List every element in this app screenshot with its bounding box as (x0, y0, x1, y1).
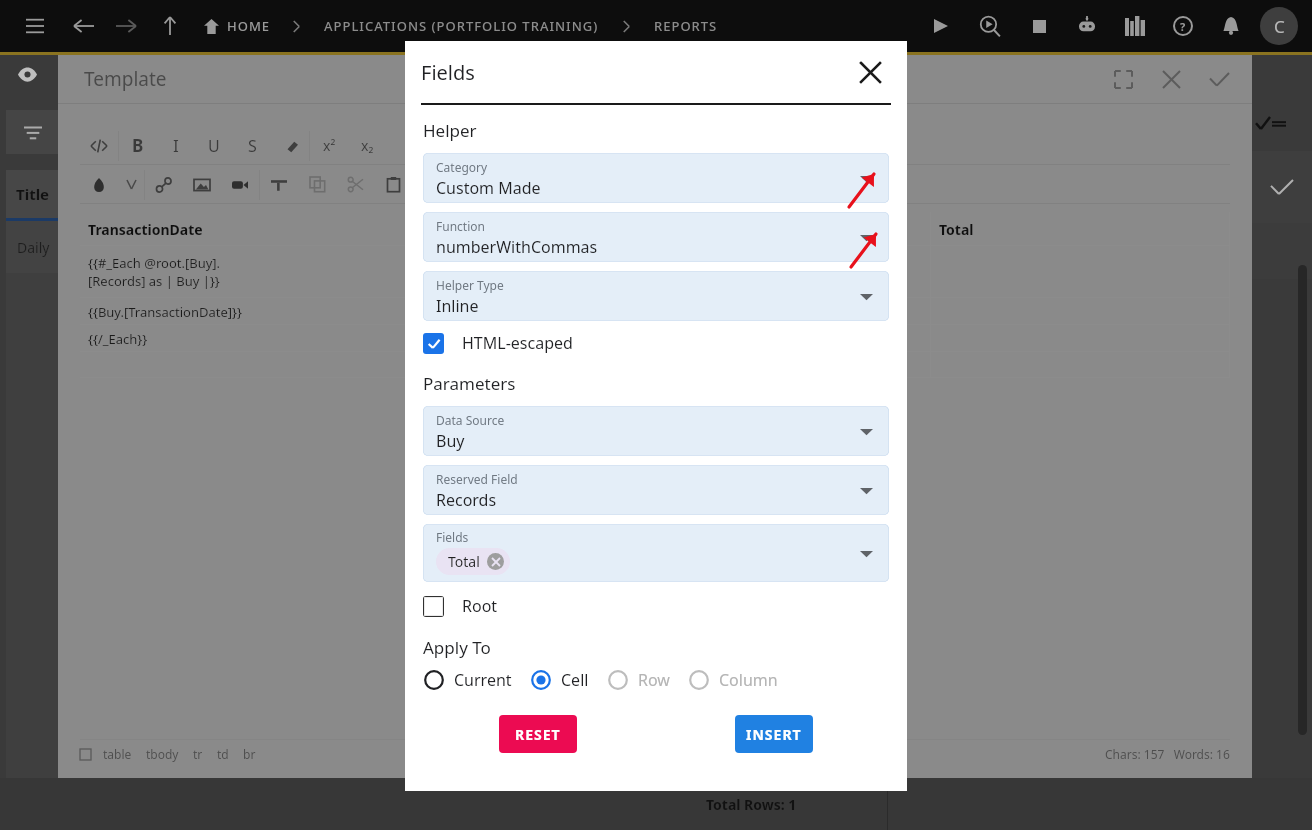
button[interactable]: Title (6, 170, 60, 218)
staticText: Helper Type (436, 277, 504, 293)
button[interactable]: Stop (1026, 13, 1052, 39)
button[interactable] (298, 165, 336, 204)
button[interactable]: Save template (1202, 62, 1236, 96)
staticText: [Records] as | Buy |}} (88, 272, 220, 290)
staticText: RESET (515, 725, 561, 744)
button[interactable]: B (119, 126, 157, 165)
button[interactable]: Assistant (1074, 13, 1100, 39)
staticText: Chars: 157 Words: 16 (1105, 746, 1230, 762)
button[interactable]: x² (310, 126, 348, 165)
button[interactable]: Row (607, 669, 670, 691)
button[interactable]: Close template (1154, 62, 1188, 96)
staticText: Fields (436, 529, 469, 545)
staticText: Custom Made (436, 177, 541, 199)
staticText: numberWithCommas (436, 236, 598, 258)
staticText: Total (939, 220, 974, 239)
staticText: Total Rows: 1 (706, 795, 797, 814)
button[interactable]: S (233, 126, 271, 165)
button[interactable]: Helper Type (423, 271, 889, 321)
staticText: Parameters (423, 372, 516, 395)
button[interactable]: Forward (110, 10, 142, 42)
staticText: Reserved Field (436, 471, 518, 487)
staticText: table (103, 746, 132, 762)
button[interactable]: Fields (423, 524, 889, 582)
button[interactable]: Library (1122, 13, 1148, 39)
staticText: REPORTS (654, 17, 718, 35)
staticText: br (243, 746, 256, 762)
button[interactable]: Search run (976, 12, 1004, 40)
button[interactable]: Category (423, 153, 889, 203)
staticText: Fields (421, 59, 475, 86)
staticText: Records (436, 489, 497, 511)
button[interactable]: Total (448, 548, 504, 575)
staticText: Category (436, 159, 488, 175)
button[interactable]: Data Source (423, 406, 889, 456)
staticText: Row (638, 669, 670, 691)
button[interactable] (336, 165, 374, 204)
staticText: td (217, 746, 229, 762)
button[interactable]: Column (688, 669, 778, 691)
button[interactable]: Up (154, 10, 186, 42)
button[interactable]: HTML-escaped (423, 332, 573, 354)
button[interactable]: x₂ (348, 126, 386, 165)
button[interactable]: REPORTS (654, 17, 718, 35)
staticText: INSERT (746, 725, 802, 744)
button[interactable] (80, 126, 118, 165)
staticText: Daily (17, 238, 50, 257)
button[interactable]: Remove Total (487, 553, 504, 570)
staticText: Root (462, 595, 498, 617)
staticText: Current (454, 669, 512, 691)
button[interactable]: U (195, 126, 233, 165)
button[interactable]: Help (1170, 13, 1196, 39)
button[interactable] (221, 165, 259, 204)
staticText: {{Buy.[TransactionDate]}} (88, 303, 242, 321)
button[interactable]: APPLICATIONS (PORTFOLIO TRAINING) (324, 17, 599, 35)
button[interactable] (183, 165, 221, 204)
button[interactable]: Confirm (1252, 151, 1312, 223)
button[interactable]: I (157, 126, 195, 165)
staticText: {{/_Each}} (88, 330, 148, 348)
staticText: APPLICATIONS (PORTFOLIO TRAINING) (324, 17, 599, 35)
staticText: Total (448, 552, 480, 571)
button[interactable]: Menu (18, 9, 52, 43)
staticText: Cell (561, 669, 589, 691)
button[interactable]: RESET (499, 715, 577, 753)
staticText: {{Buy.[Quantity]}} (444, 303, 552, 321)
staticText: tbody (146, 746, 179, 762)
button[interactable]: Notifications (1218, 13, 1244, 39)
button[interactable] (271, 126, 309, 165)
button[interactable]: Run (928, 13, 954, 39)
button[interactable]: More colors (118, 165, 144, 204)
staticText: S (248, 135, 257, 157)
staticText: HOME (227, 17, 271, 35)
staticText: Quantity (444, 220, 506, 239)
button[interactable]: HOME (204, 17, 271, 35)
button[interactable] (80, 165, 118, 204)
staticText: Data Source (436, 412, 505, 428)
staticText: TransactionDate (88, 220, 203, 239)
button[interactable] (374, 165, 412, 204)
button[interactable] (6, 110, 60, 154)
staticText: U (208, 135, 220, 157)
button[interactable]: Root (423, 595, 498, 617)
staticText: C (1274, 15, 1285, 38)
staticText: x² (323, 136, 336, 155)
button[interactable]: Function (423, 212, 889, 262)
button[interactable]: Close (851, 53, 889, 91)
button[interactable]: Daily (6, 221, 60, 273)
staticText: {{#_Each @root.[Buy]. (88, 254, 221, 272)
staticText: B (132, 134, 144, 157)
button[interactable]: Back (68, 10, 100, 42)
button[interactable]: Current (423, 669, 512, 691)
button[interactable]: Account (1260, 7, 1298, 45)
button[interactable] (260, 165, 298, 204)
button[interactable]: Fullscreen (1106, 62, 1140, 96)
staticText: tr (193, 746, 203, 762)
staticText: Title (16, 184, 50, 204)
button[interactable]: INSERT (735, 715, 813, 753)
staticText: HTML-escaped (462, 332, 573, 354)
button[interactable]: Reserved Field (423, 465, 889, 515)
button[interactable]: Cell (530, 669, 589, 691)
button[interactable] (145, 165, 183, 204)
staticText: Function (436, 218, 485, 234)
